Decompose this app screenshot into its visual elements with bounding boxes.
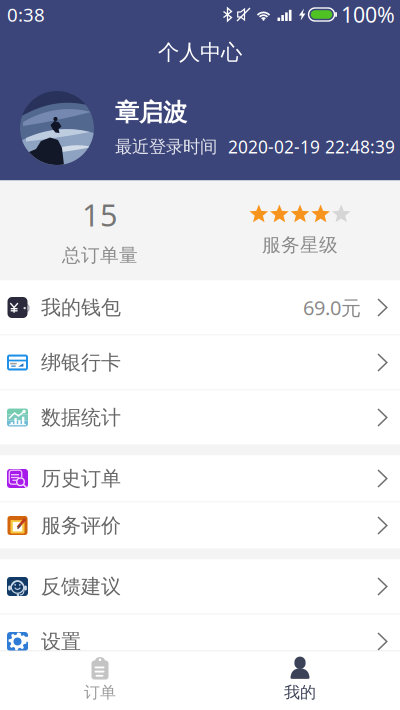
staticText: 最近登录时间 bbox=[115, 136, 217, 157]
staticText: 个人中心 bbox=[158, 39, 242, 66]
staticText: 反馈建议 bbox=[41, 574, 121, 599]
staticText: 服务星级 bbox=[262, 233, 338, 256]
staticText: 15 bbox=[82, 194, 118, 235]
staticText: 69.0元 bbox=[303, 294, 361, 321]
staticText: 0:38 bbox=[7, 2, 45, 27]
button[interactable]: 订单 bbox=[0, 651, 200, 710]
button[interactable]: 历史订单 bbox=[0, 455, 400, 501]
button[interactable]: 数据统计 bbox=[0, 390, 400, 444]
staticText: 设置 bbox=[41, 629, 81, 654]
staticText: 我的 bbox=[284, 682, 316, 702]
staticText: 历史订单 bbox=[41, 466, 121, 491]
staticText: 绑银行卡 bbox=[41, 350, 121, 375]
button[interactable]: 我的钱包 bbox=[0, 280, 400, 334]
staticText: 章启波 bbox=[115, 98, 187, 127]
staticText: 服务评价 bbox=[41, 513, 121, 538]
staticText: 订单 bbox=[84, 682, 116, 702]
button[interactable]: 服务评价 bbox=[0, 502, 400, 548]
button[interactable]: 我的 bbox=[200, 651, 400, 710]
staticText: 100% bbox=[341, 0, 395, 29]
staticText: 总订单量 bbox=[62, 244, 138, 267]
staticText: 2020-02-19 22:48:39 bbox=[228, 135, 395, 158]
button[interactable]: 设置 bbox=[0, 614, 400, 668]
staticText: 我的钱包 bbox=[41, 295, 121, 320]
button[interactable]: 绑银行卡 bbox=[0, 335, 400, 389]
staticText: 数据统计 bbox=[41, 405, 121, 430]
button[interactable]: 反馈建议 bbox=[0, 559, 400, 613]
